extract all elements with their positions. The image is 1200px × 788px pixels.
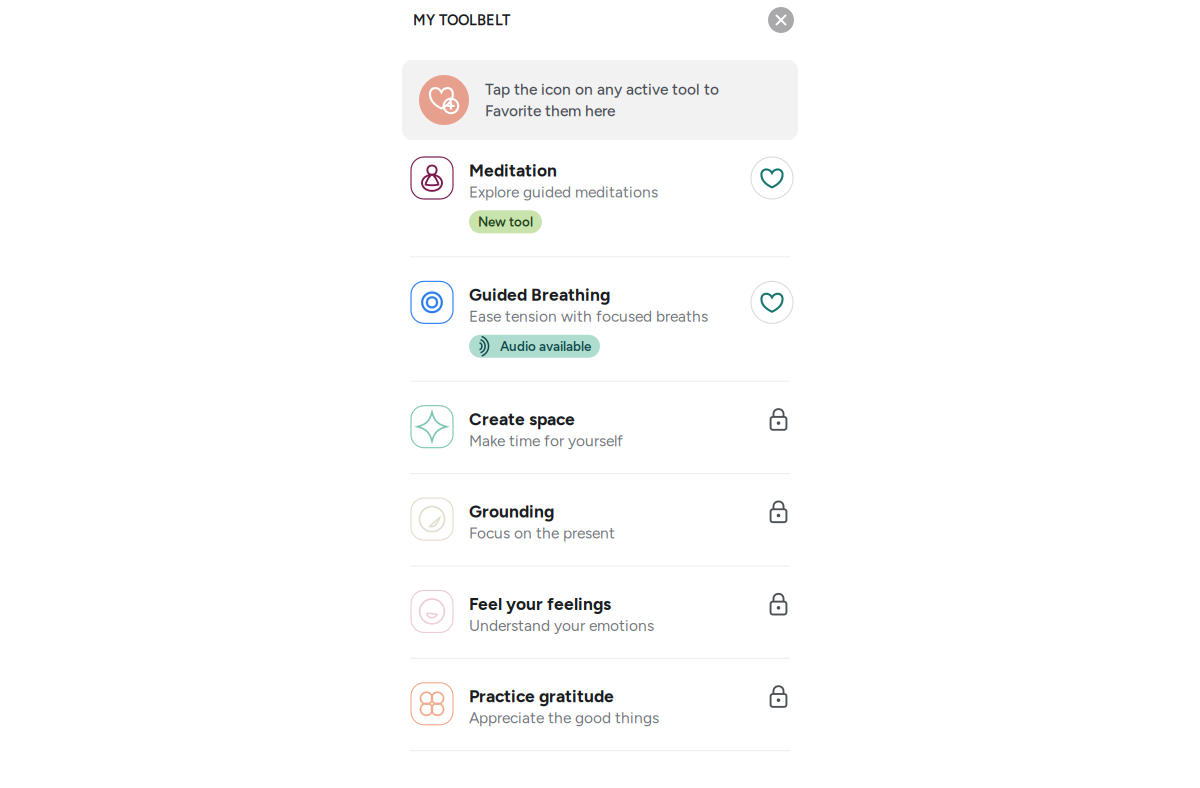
staticText: Focus on the present <box>469 524 615 542</box>
staticText: Understand your emotions <box>469 616 654 635</box>
staticText: Guided Breathing <box>469 284 610 305</box>
staticText: Ease tension with focused breaths <box>469 307 708 326</box>
staticText: MY TOOLBELT <box>413 11 510 29</box>
button[interactable]: Favorite <box>751 281 793 323</box>
button[interactable]: Guided Breathing <box>394 257 810 381</box>
staticText: Audio available <box>500 338 591 354</box>
button[interactable]: Close <box>768 7 794 33</box>
staticText: Create space <box>469 409 575 429</box>
staticText: Tap the icon on any active tool to <box>485 80 719 98</box>
staticText: Meditation <box>469 160 557 181</box>
staticText: Favorite them here <box>485 101 615 120</box>
button[interactable]: Locked <box>751 498 793 540</box>
button[interactable]: Favorite <box>751 157 793 199</box>
button[interactable]: Locked <box>751 406 793 448</box>
button[interactable]: Feel your feelings <box>394 566 810 658</box>
button[interactable]: Grounding <box>394 474 810 565</box>
staticText: New tool <box>478 214 533 230</box>
staticText: Feel your feelings <box>469 593 611 614</box>
button[interactable]: Create space <box>394 382 810 473</box>
button[interactable]: Locked <box>751 590 793 632</box>
button[interactable]: Practice gratitude <box>394 659 810 750</box>
staticText: Grounding <box>469 501 554 522</box>
staticText: Explore guided meditations <box>469 183 658 201</box>
button[interactable]: Meditation <box>394 140 810 256</box>
staticText: Practice gratitude <box>469 686 614 707</box>
staticText: Appreciate the good things <box>469 709 659 727</box>
staticText: Make time for yourself <box>469 431 623 450</box>
button[interactable]: Locked <box>751 683 793 725</box>
